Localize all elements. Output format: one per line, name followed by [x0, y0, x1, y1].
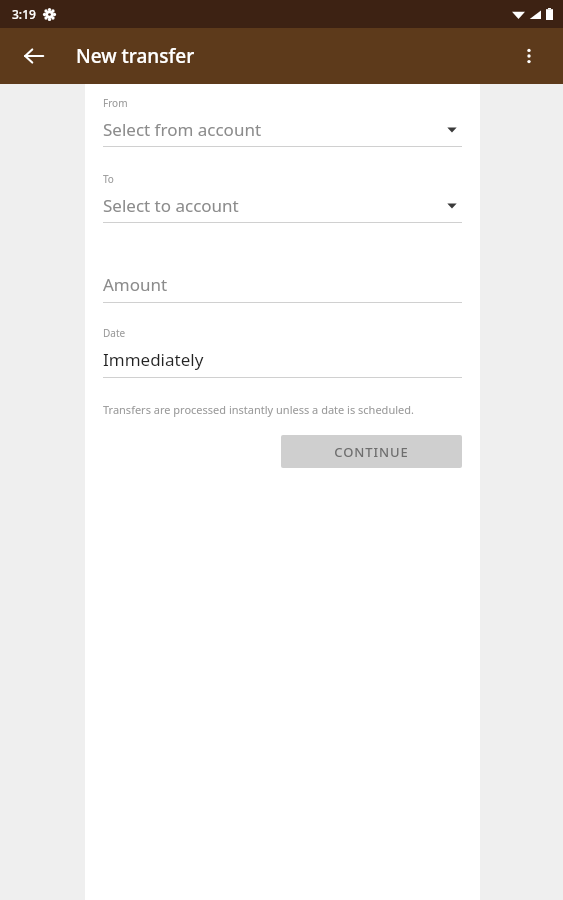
staticText: Transfers are processed instantly unless… — [103, 402, 414, 417]
staticText: Immediately — [103, 348, 204, 371]
staticText: Select from account — [103, 118, 446, 141]
button[interactable]: More options — [505, 32, 553, 80]
staticText: New transfer — [76, 43, 195, 69]
staticText: Select to account — [103, 194, 446, 217]
staticText: To — [103, 172, 114, 186]
button[interactable]: Amount — [103, 273, 462, 303]
button[interactable]: Date — [103, 326, 462, 378]
staticText: From — [103, 96, 128, 110]
staticText: 3:19 — [12, 6, 36, 22]
staticText: Date — [103, 326, 126, 340]
button[interactable]: Back — [10, 32, 58, 80]
button[interactable]: CONTINUE — [281, 435, 462, 468]
staticText: Amount — [103, 273, 168, 296]
button[interactable]: From — [103, 96, 462, 147]
staticText: CONTINUE — [334, 443, 409, 461]
button[interactable]: To — [103, 172, 462, 223]
